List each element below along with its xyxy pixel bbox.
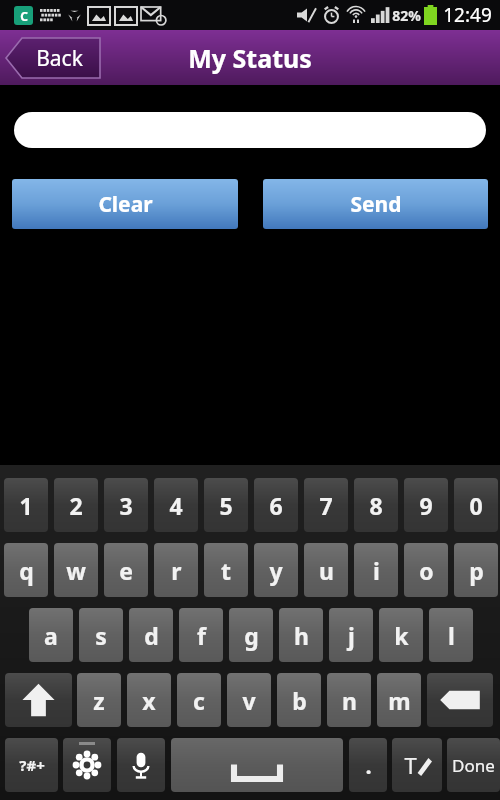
staticText: x	[142, 685, 156, 716]
button[interactable]: Back	[6, 38, 100, 78]
staticText: Back	[36, 44, 83, 73]
staticText: p	[469, 555, 484, 586]
staticText: w	[66, 555, 86, 586]
staticText: v	[242, 685, 256, 716]
staticText: 3	[119, 490, 133, 521]
button[interactable]: ?#+	[5, 738, 58, 792]
staticText: n	[342, 685, 357, 716]
staticText: 0	[469, 490, 483, 521]
button[interactable]: 6	[254, 478, 298, 532]
button[interactable]: e	[104, 543, 148, 597]
button[interactable]: 8	[354, 478, 398, 532]
staticText: f	[197, 620, 206, 651]
staticText: 7	[319, 490, 333, 521]
staticText: T	[404, 750, 417, 780]
button[interactable]: Backspace	[427, 673, 493, 727]
staticText: u	[319, 555, 334, 586]
staticText: Done	[452, 754, 495, 777]
button[interactable]: w	[54, 543, 98, 597]
staticText: C	[20, 8, 28, 24]
button[interactable]: 2	[54, 478, 98, 532]
button[interactable]: z	[77, 673, 121, 727]
button[interactable]: 5	[204, 478, 248, 532]
button[interactable]: j	[329, 608, 373, 662]
staticText: d	[144, 620, 159, 651]
button[interactable]: .	[349, 738, 387, 792]
button[interactable]: p	[454, 543, 498, 597]
button[interactable]: Done	[447, 738, 500, 792]
staticText: r	[171, 555, 182, 586]
button[interactable]: m	[377, 673, 421, 727]
staticText: 12:49	[443, 2, 492, 28]
staticText: e	[119, 555, 133, 586]
button[interactable]: Voice input	[117, 738, 165, 792]
staticText: k	[394, 620, 409, 651]
button[interactable]: n	[327, 673, 371, 727]
button[interactable]: Send	[263, 179, 488, 229]
button[interactable]: t	[204, 543, 248, 597]
staticText: 9	[419, 490, 433, 521]
button[interactable]	[14, 112, 486, 148]
staticText: b	[292, 685, 307, 716]
button[interactable]: c	[177, 673, 221, 727]
staticText: ?#+	[19, 755, 45, 775]
staticText: a	[44, 620, 58, 651]
staticText: o	[419, 555, 434, 586]
button[interactable]: q	[4, 543, 48, 597]
staticText: s	[95, 620, 107, 651]
staticText: l	[448, 620, 455, 651]
button[interactable]: 7	[304, 478, 348, 532]
staticText: 5	[219, 490, 233, 521]
staticText: 4	[169, 490, 183, 521]
button[interactable]: r	[154, 543, 198, 597]
button[interactable]: g	[229, 608, 273, 662]
button[interactable]: y	[254, 543, 298, 597]
button[interactable]: o	[404, 543, 448, 597]
staticText: g	[244, 620, 259, 651]
button[interactable]: 4	[154, 478, 198, 532]
button[interactable]: Shift	[5, 673, 72, 727]
button[interactable]: b	[277, 673, 321, 727]
button[interactable]: k	[379, 608, 423, 662]
button[interactable]: s	[79, 608, 123, 662]
button[interactable]: a	[29, 608, 73, 662]
staticText: z	[93, 685, 105, 716]
staticText: .	[365, 750, 372, 780]
button[interactable]: x	[127, 673, 171, 727]
button[interactable]: d	[129, 608, 173, 662]
button[interactable]: Handwriting input	[392, 738, 442, 792]
staticText: 6	[269, 490, 283, 521]
staticText: 1	[19, 490, 33, 521]
staticText: j	[348, 620, 355, 651]
button[interactable]: f	[179, 608, 223, 662]
staticText: Clear	[98, 190, 153, 219]
button[interactable]: Clear	[12, 179, 238, 229]
button[interactable]: 3	[104, 478, 148, 532]
button[interactable]: l	[429, 608, 473, 662]
staticText: t	[221, 555, 231, 586]
button[interactable]: v	[227, 673, 271, 727]
button[interactable]: Space	[171, 738, 343, 792]
button[interactable]: 1	[4, 478, 48, 532]
button[interactable]: u	[304, 543, 348, 597]
staticText: 8	[369, 490, 383, 521]
staticText: q	[19, 555, 34, 586]
button[interactable]: h	[279, 608, 323, 662]
staticText: 2	[69, 490, 83, 521]
staticText: c	[193, 685, 205, 716]
staticText: h	[294, 620, 309, 651]
staticText: 82%	[392, 6, 421, 25]
staticText: y	[269, 555, 283, 586]
button[interactable]: i	[354, 543, 398, 597]
staticText: i	[373, 555, 380, 586]
button[interactable]: 0	[454, 478, 498, 532]
staticText: My Status	[188, 41, 312, 75]
staticText: Send	[350, 190, 402, 219]
button[interactable]: 9	[404, 478, 448, 532]
staticText: m	[388, 685, 411, 716]
button[interactable]: Settings	[63, 738, 111, 792]
